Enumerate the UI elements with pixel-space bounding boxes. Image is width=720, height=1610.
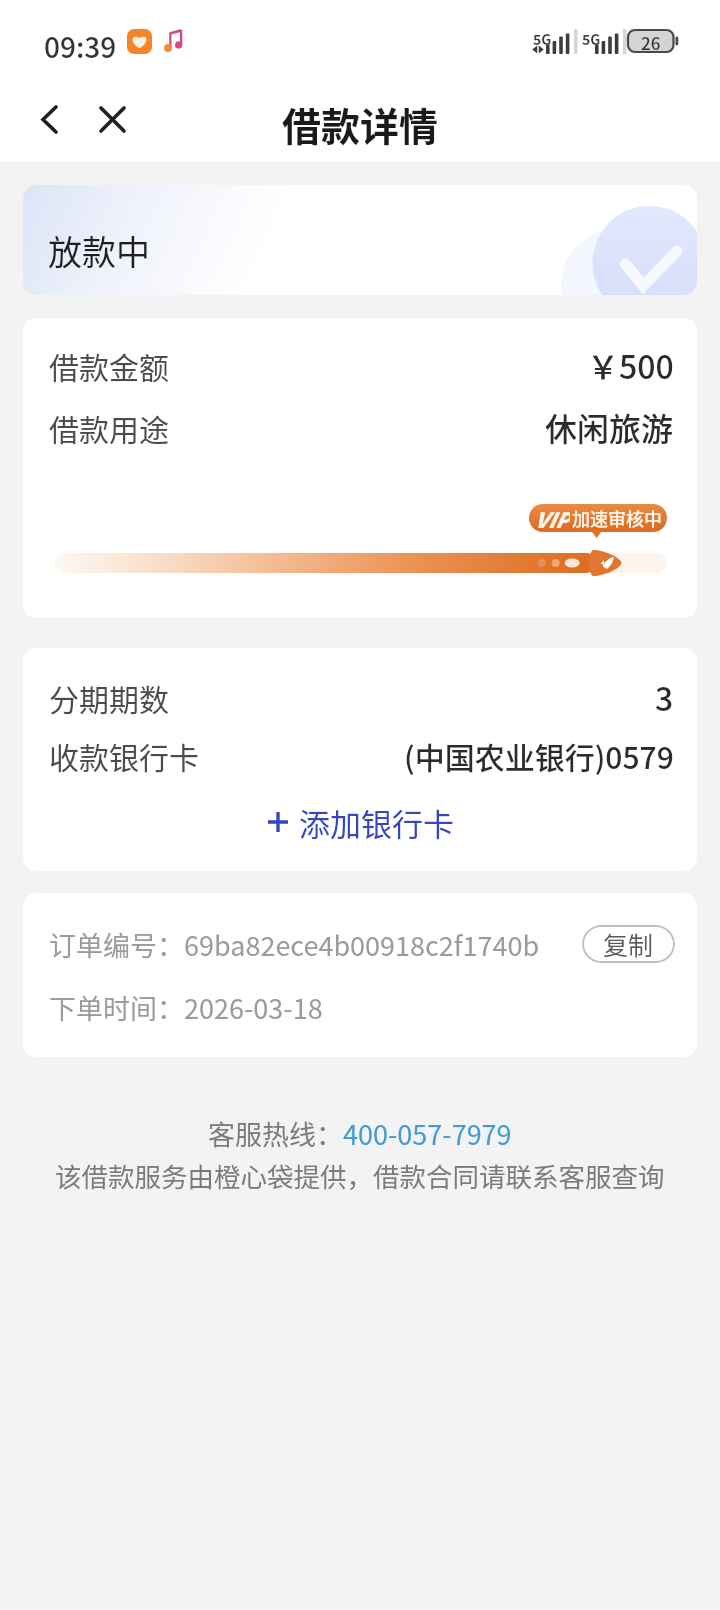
staticText: 5G xyxy=(533,29,552,49)
staticText: 借款用途 xyxy=(49,406,169,449)
staticText: VIP xyxy=(534,504,570,532)
button[interactable]: 复制 xyxy=(582,925,675,963)
staticText: 休闲旅游 xyxy=(545,404,674,450)
staticText: 加速审核中 xyxy=(572,505,662,531)
staticText: 400-057-7979 xyxy=(343,1114,512,1153)
button[interactable]: Back xyxy=(21,91,77,147)
staticText: 分期期数 xyxy=(49,676,169,719)
staticText: 借款详情 xyxy=(282,96,439,152)
staticText: 5G xyxy=(582,29,601,49)
button[interactable]: 添加银行卡 xyxy=(23,798,697,846)
staticText: 26 xyxy=(641,30,661,52)
staticText: (中国农业银行)0579 xyxy=(404,734,674,777)
staticText: 09:39 xyxy=(44,26,117,67)
staticText: 下单时间：2026-03-18 xyxy=(49,988,323,1027)
staticText: 3 xyxy=(655,674,674,720)
staticText: 收款银行卡 xyxy=(49,734,199,777)
staticText: 放款中 xyxy=(48,226,150,275)
button[interactable]: 400-057-7979 xyxy=(343,1114,512,1153)
staticText: 添加银行卡 xyxy=(299,800,454,845)
staticText: 订单编号：69ba82ece4b00918c2f1740b xyxy=(49,925,540,964)
staticText: 客服热线： xyxy=(208,1114,343,1153)
staticText: 该借款服务由橙心袋提供，借款合同请联系客服查询 xyxy=(55,1156,665,1194)
button[interactable]: Close xyxy=(84,91,140,147)
staticText: 借款金额 xyxy=(49,344,169,387)
staticText: 复制 xyxy=(603,926,654,962)
staticText: ￥500 xyxy=(587,342,674,388)
